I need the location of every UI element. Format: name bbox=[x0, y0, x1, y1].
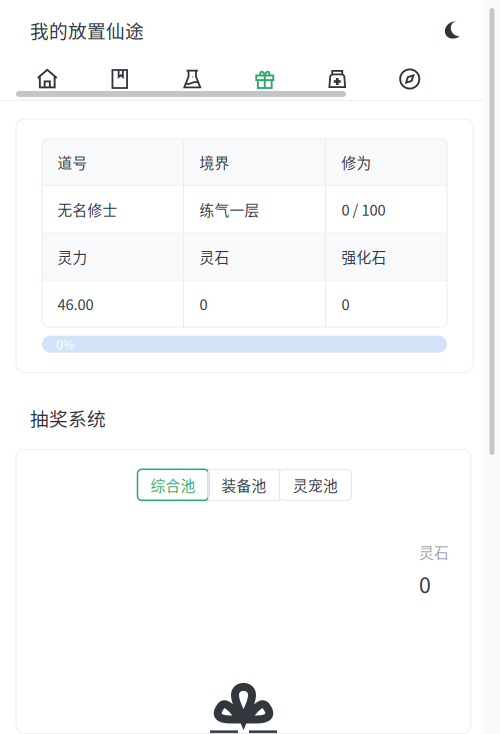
staticText: 灵力 bbox=[57, 246, 87, 267]
button[interactable]: 装备池 bbox=[208, 469, 279, 500]
staticText: 0 bbox=[419, 568, 431, 599]
staticText: 练气一层 bbox=[199, 199, 259, 220]
staticText: 灵石 bbox=[419, 541, 449, 562]
staticText: 道号 bbox=[57, 151, 87, 173]
staticText: 装备池 bbox=[221, 474, 266, 495]
staticText: 灵宠池 bbox=[293, 474, 338, 495]
staticText: 我的放置仙途 bbox=[30, 16, 144, 43]
staticText: 无名修士 bbox=[57, 199, 117, 220]
staticText: 抽奖系统 bbox=[30, 404, 106, 431]
staticText: 0 / 100 bbox=[341, 199, 385, 220]
staticText: 境界 bbox=[199, 151, 229, 173]
button[interactable]: Journal bbox=[83, 69, 156, 89]
staticText: 灵石 bbox=[199, 246, 229, 267]
staticText: 综合池 bbox=[150, 474, 195, 495]
button[interactable]: Gacha bbox=[228, 69, 301, 89]
button[interactable]: Home bbox=[11, 69, 83, 89]
button[interactable]: Inventory bbox=[301, 69, 373, 89]
button[interactable]: 灵宠池 bbox=[279, 469, 351, 500]
button[interactable]: Toggle dark mode bbox=[439, 17, 465, 43]
staticText: 0% bbox=[56, 335, 75, 353]
button[interactable]: Alchemy bbox=[156, 69, 228, 89]
staticText: 0 bbox=[341, 293, 349, 314]
staticText: 0 bbox=[199, 293, 207, 314]
button[interactable]: 综合池 bbox=[137, 469, 208, 500]
button[interactable]: Explore bbox=[373, 69, 446, 89]
staticText: 46.00 bbox=[57, 293, 93, 314]
staticText: 修为 bbox=[341, 151, 371, 173]
staticText: 强化石 bbox=[341, 246, 386, 267]
